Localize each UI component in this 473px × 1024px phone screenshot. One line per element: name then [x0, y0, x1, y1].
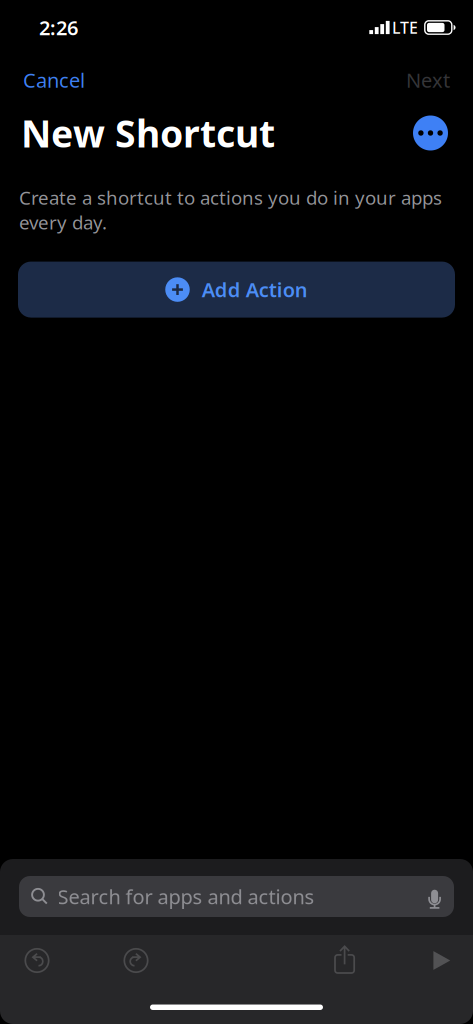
staticText: Cancel	[23, 67, 85, 93]
staticText: LTE	[392, 17, 418, 38]
button[interactable]: Undo	[22, 945, 52, 975]
staticText: New Shortcut	[21, 108, 275, 158]
button[interactable]: Run	[433, 950, 451, 971]
staticText: Search for apps and actions	[57, 883, 314, 910]
button[interactable]: More options	[413, 115, 448, 150]
button[interactable]: Add Action	[18, 262, 455, 318]
button[interactable]: Cancel	[21, 60, 87, 100]
button[interactable]: Redo	[121, 945, 151, 975]
button[interactable]: Next	[404, 60, 452, 100]
staticText: Create a shortcut to actions you do in y…	[19, 185, 442, 235]
staticText: 2:26	[39, 14, 78, 41]
staticText: Next	[406, 67, 450, 93]
button[interactable]: Share	[334, 946, 355, 975]
staticText: Add Action	[202, 276, 308, 303]
